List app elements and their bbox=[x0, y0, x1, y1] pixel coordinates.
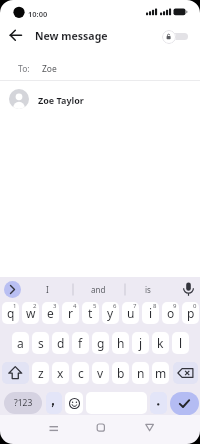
button[interactable]: h bbox=[112, 332, 129, 354]
button[interactable]: a bbox=[12, 332, 29, 354]
staticText: r bbox=[68, 305, 73, 321]
button[interactable]: f bbox=[72, 332, 89, 354]
button[interactable]: u bbox=[122, 302, 139, 324]
button[interactable] bbox=[4, 281, 21, 298]
staticText: l bbox=[179, 335, 183, 351]
button[interactable] bbox=[0, 84, 200, 112]
staticText: b bbox=[117, 365, 125, 381]
staticText: v bbox=[97, 365, 104, 381]
staticText: 5 bbox=[93, 302, 97, 310]
staticText: z bbox=[38, 365, 44, 381]
staticText: o bbox=[167, 305, 175, 321]
button[interactable]: j bbox=[132, 332, 149, 354]
button[interactable] bbox=[46, 392, 62, 414]
staticText: i bbox=[149, 305, 153, 321]
staticText: I bbox=[46, 284, 49, 295]
staticText: c bbox=[78, 365, 84, 381]
staticText: is bbox=[145, 284, 151, 295]
staticText: t bbox=[88, 305, 93, 321]
button[interactable] bbox=[173, 362, 198, 384]
button[interactable]: r bbox=[62, 302, 79, 324]
button[interactable]: ?123 bbox=[4, 392, 42, 414]
staticText: 10:00 bbox=[28, 9, 48, 19]
staticText: 0 bbox=[193, 302, 197, 310]
button[interactable] bbox=[89, 418, 113, 436]
button[interactable]: z bbox=[32, 362, 49, 384]
staticText: g bbox=[97, 335, 105, 351]
button[interactable]: l bbox=[172, 332, 189, 354]
button[interactable] bbox=[160, 27, 192, 46]
button[interactable]: m bbox=[152, 362, 169, 384]
staticText: 1 bbox=[13, 302, 17, 310]
staticText: To: bbox=[18, 63, 30, 75]
button[interactable] bbox=[0, 56, 200, 80]
button[interactable]: I bbox=[27, 279, 67, 300]
button[interactable] bbox=[138, 418, 162, 436]
button[interactable] bbox=[2, 362, 29, 384]
button[interactable]: d bbox=[52, 332, 69, 354]
staticText: 3 bbox=[53, 302, 57, 310]
staticText: m bbox=[155, 365, 167, 381]
button[interactable]: o bbox=[162, 302, 179, 324]
staticText: w bbox=[26, 305, 36, 321]
staticText: k bbox=[157, 335, 164, 351]
button[interactable]: b bbox=[112, 362, 129, 384]
button[interactable]: is bbox=[130, 279, 166, 300]
button[interactable]: v bbox=[92, 362, 109, 384]
button[interactable]: p bbox=[182, 302, 199, 324]
staticText: p bbox=[187, 305, 195, 321]
staticText: 8 bbox=[153, 302, 157, 310]
button[interactable]: e bbox=[42, 302, 59, 324]
button[interactable]: w bbox=[22, 302, 39, 324]
staticText: h bbox=[117, 335, 125, 351]
staticText: Zoe bbox=[42, 63, 57, 75]
staticText: 2 bbox=[33, 302, 37, 310]
staticText: ?123 bbox=[14, 397, 33, 409]
staticText: x bbox=[57, 365, 64, 381]
staticText: u bbox=[127, 305, 135, 321]
button[interactable]: q bbox=[2, 302, 19, 324]
button[interactable]: n bbox=[132, 362, 149, 384]
staticText: 6 bbox=[113, 302, 117, 310]
button[interactable] bbox=[150, 392, 167, 414]
button[interactable] bbox=[6, 28, 22, 44]
button[interactable]: x bbox=[52, 362, 69, 384]
staticText: q bbox=[7, 305, 15, 321]
staticText: n bbox=[137, 365, 145, 381]
staticText: 4 bbox=[73, 302, 77, 310]
button[interactable]: y bbox=[102, 302, 119, 324]
staticText: and bbox=[91, 284, 106, 295]
button[interactable] bbox=[180, 281, 197, 298]
staticText: e bbox=[47, 305, 54, 321]
button[interactable]: t bbox=[82, 302, 99, 324]
button[interactable]: g bbox=[92, 332, 109, 354]
button[interactable]: s bbox=[32, 332, 49, 354]
button[interactable] bbox=[65, 392, 83, 414]
staticText: New message bbox=[35, 29, 108, 43]
staticText: Zoe Taylor bbox=[38, 94, 84, 106]
button[interactable] bbox=[170, 392, 199, 415]
button[interactable]: c bbox=[72, 362, 89, 384]
staticText: 7 bbox=[133, 302, 137, 310]
button[interactable]: i bbox=[142, 302, 159, 324]
button[interactable]: k bbox=[152, 332, 169, 354]
staticText: s bbox=[38, 335, 44, 351]
staticText: j bbox=[139, 335, 143, 351]
staticText: 9 bbox=[173, 302, 177, 310]
staticText: y bbox=[107, 305, 114, 321]
staticText: f bbox=[78, 335, 83, 351]
button[interactable]: and bbox=[78, 279, 118, 300]
staticText: a bbox=[17, 335, 24, 351]
staticText: d bbox=[57, 335, 65, 351]
button[interactable] bbox=[42, 418, 66, 436]
